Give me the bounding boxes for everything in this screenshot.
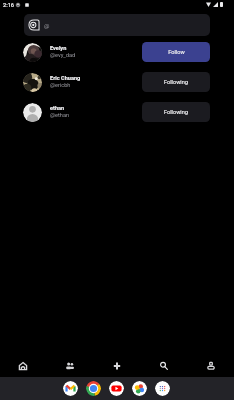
staticText: 2:16	[3, 2, 15, 9]
button[interactable]: Communities	[46, 355, 93, 377]
button[interactable]: Profile	[187, 355, 234, 377]
button[interactable]: Eric Chuang	[0, 67, 234, 97]
button[interactable]: Following	[142, 102, 210, 122]
button[interactable]: Following	[142, 72, 210, 92]
staticText: ethan	[50, 105, 65, 112]
button[interactable]: Follow	[142, 42, 210, 62]
button[interactable]: Photos	[132, 381, 147, 396]
other: Search	[28, 19, 40, 31]
button[interactable]: Search	[140, 355, 187, 377]
button[interactable]: Create post	[93, 355, 140, 377]
staticText: Evelyn	[50, 45, 67, 52]
staticText: @evy_dad	[50, 52, 76, 59]
staticText: @ericbh	[50, 82, 71, 89]
button[interactable]: Evelyn	[0, 37, 234, 67]
button[interactable]: Gmail	[63, 381, 78, 396]
staticText: @	[44, 22, 50, 29]
button[interactable]: Home	[0, 355, 46, 377]
button[interactable]: Chrome	[86, 381, 101, 396]
staticText: Follow	[168, 49, 185, 56]
button[interactable]: ethan	[0, 97, 234, 127]
staticText: Following	[164, 79, 188, 86]
staticText: @ethan	[50, 112, 70, 119]
staticText: Following	[164, 109, 188, 116]
button[interactable]: All apps	[155, 381, 170, 396]
staticText: Eric Chuang	[50, 75, 81, 82]
button[interactable]: Search	[24, 14, 210, 36]
button[interactable]: YouTube	[109, 381, 124, 396]
